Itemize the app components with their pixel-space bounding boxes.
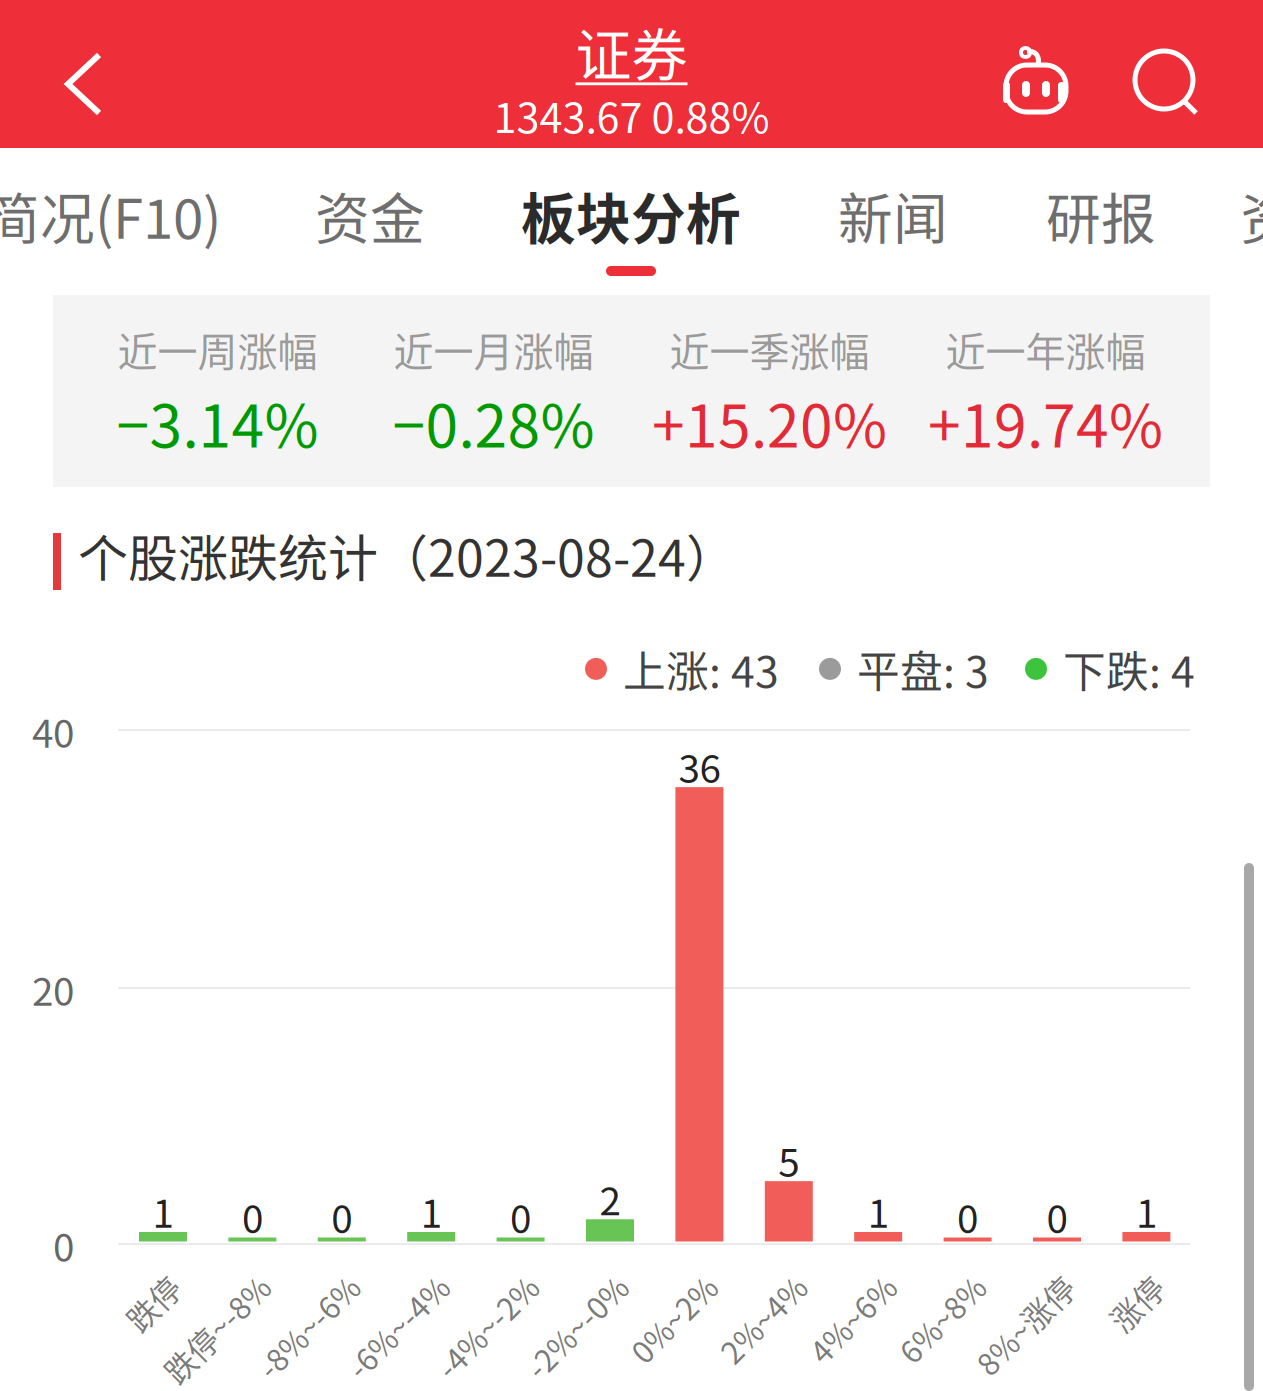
staticText: 1 (152, 1183, 173, 1239)
staticText: 新闻 (838, 175, 948, 255)
staticText: 研报 (1046, 175, 1156, 255)
button[interactable]: Back (0, 0, 152, 148)
staticText: 0 (331, 1188, 352, 1244)
staticText: 1343.67 0.88% (493, 85, 769, 145)
staticText: 40 (32, 703, 74, 759)
staticText: 0%~2% (592, 1264, 699, 1308)
staticText: 近一周涨幅 (117, 320, 317, 378)
staticText: +15.20% (652, 379, 887, 464)
staticText: 1 (421, 1183, 442, 1239)
staticText: 0 (242, 1188, 263, 1244)
staticText: -8%~-6% (213, 1264, 342, 1308)
staticText: 简况(F10) (0, 175, 221, 255)
staticText: 平盘: 3 (857, 638, 989, 700)
staticText: 近一年涨幅 (945, 320, 1145, 378)
staticText: -2%~-0% (481, 1264, 610, 1308)
staticText: 0 (1046, 1188, 1067, 1244)
button[interactable]: 研报 (1001, 148, 1201, 295)
staticText: 跌停 (101, 1264, 163, 1308)
staticText: 5 (778, 1132, 799, 1188)
staticText: 近一月涨幅 (393, 320, 593, 378)
staticText: 涨停 (1084, 1264, 1146, 1308)
staticText: 近一季涨幅 (669, 320, 869, 378)
staticText: 36 (678, 738, 720, 794)
staticText: 1 (1136, 1183, 1157, 1239)
staticText: 1 (868, 1183, 889, 1239)
staticText: 2 (599, 1170, 620, 1226)
staticText: 0 (957, 1188, 978, 1244)
staticText: -4%~-2% (392, 1264, 521, 1308)
staticText: -6%~-4% (302, 1264, 431, 1308)
button[interactable]: AI assistant (992, 29, 1076, 113)
staticText: 个股涨跌统计（2023-08-24） (78, 519, 736, 591)
button[interactable]: 资金 (270, 148, 470, 295)
staticText: 2%~4% (682, 1264, 789, 1308)
button[interactable]: 板块分析 (501, 148, 761, 295)
button[interactable]: 简况(F10) (0, 148, 253, 295)
staticText: 跌停~-8% (117, 1264, 252, 1308)
staticText: 上涨: 43 (623, 638, 779, 700)
button[interactable]: 新闻 (793, 148, 993, 295)
staticText: 证券 (575, 10, 687, 92)
staticText: 板块分析 (521, 175, 741, 255)
staticText: 0 (53, 1217, 74, 1273)
staticText: 资金 (315, 175, 425, 255)
staticText: −0.28% (392, 379, 594, 464)
button[interactable]: 资 (1208, 148, 1263, 295)
staticText: 资 (1240, 175, 1263, 255)
staticText: 8%~涨停 (933, 1264, 1057, 1308)
staticText: 6%~8% (861, 1264, 968, 1308)
staticText: 0 (510, 1188, 531, 1244)
staticText: 下跌: 4 (1063, 638, 1195, 700)
staticText: −3.14% (116, 379, 318, 464)
button[interactable]: Search (1133, 45, 1209, 121)
staticText: +19.74% (928, 379, 1163, 464)
staticText: 20 (32, 961, 74, 1017)
staticText: 4%~6% (771, 1264, 878, 1308)
